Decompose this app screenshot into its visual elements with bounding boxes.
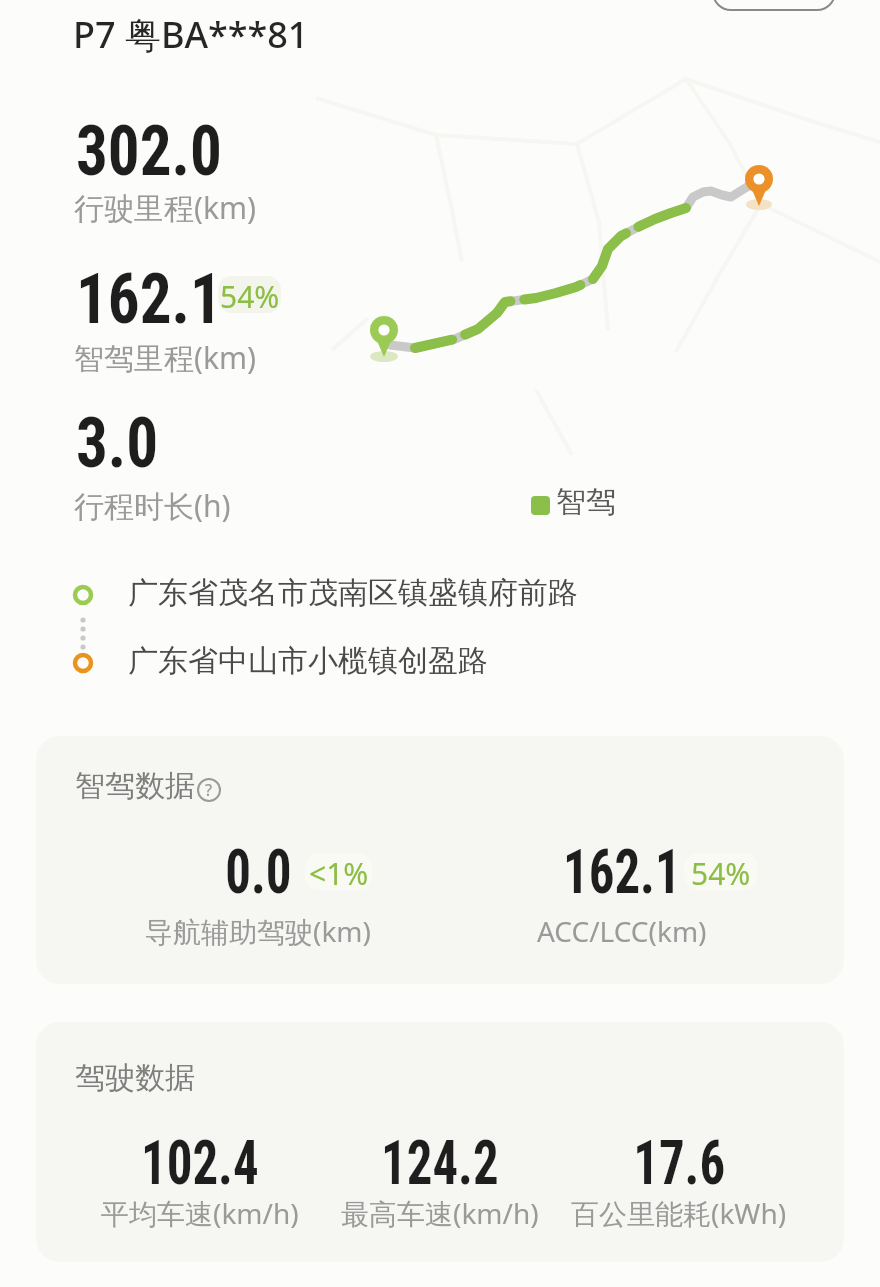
staticText: 智驾数据 (75, 767, 195, 805)
staticText: 行程时长(h) (74, 485, 231, 526)
staticText: 17.6 (633, 1126, 726, 1199)
staticText: 百公里能耗(kWh) (571, 1194, 787, 1232)
staticText: 智驾里程(km) (74, 337, 257, 378)
staticText: 54% (691, 853, 751, 890)
staticText: 3.0 (76, 402, 159, 484)
staticText: P7 粤BA***81 (73, 10, 309, 59)
staticText: 162.1 (563, 835, 681, 908)
staticText: 124.2 (381, 1126, 499, 1199)
staticText: 平均车速(km/h) (101, 1194, 299, 1232)
staticText: 行驶里程(km) (74, 187, 257, 228)
staticText: 302.0 (76, 110, 223, 192)
staticText: 驾驶数据 (75, 1059, 195, 1097)
staticText: 最高车速(km/h) (341, 1194, 539, 1232)
staticText: 0.0 (225, 835, 292, 908)
staticText: 广东省中山市小榄镇创盈路 (128, 642, 488, 680)
staticText: ACC/LCC(km) (537, 912, 707, 950)
staticText: 102.4 (141, 1126, 259, 1199)
staticText: 智驾 (556, 483, 616, 521)
staticText: <1% (309, 853, 369, 890)
staticText: 54% (220, 276, 280, 313)
staticText: 广东省茂名市茂南区镇盛镇府前路 (128, 574, 578, 612)
staticText: 162.1 (76, 258, 223, 340)
staticText: 导航辅助驾驶(km) (145, 912, 371, 950)
staticText: ? (205, 779, 213, 801)
